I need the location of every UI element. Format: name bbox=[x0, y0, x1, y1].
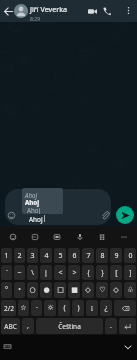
staticText: 2 bbox=[17, 251, 22, 261]
button[interactable]: 7 bbox=[82, 248, 94, 263]
button[interactable]: Clipboard bbox=[48, 228, 66, 246]
staticText: □ bbox=[57, 286, 64, 294]
button[interactable]: | bbox=[40, 265, 52, 280]
button[interactable]: . bbox=[105, 318, 117, 334]
button[interactable]: { bbox=[82, 265, 94, 280]
staticText: ◇ bbox=[85, 286, 91, 294]
button[interactable]: Jiří Veverka bbox=[30, 4, 68, 22]
staticText: > bbox=[72, 268, 77, 278]
button[interactable]: ] bbox=[124, 265, 136, 280]
other: Enter bbox=[124, 323, 131, 330]
button[interactable]: Emoji bbox=[4, 228, 22, 246]
staticText: \ bbox=[31, 268, 34, 278]
staticText: [ bbox=[115, 268, 118, 278]
button[interactable]: } bbox=[96, 265, 108, 280]
staticText: 4 bbox=[44, 251, 49, 261]
button[interactable]: Back bbox=[0, 3, 16, 19]
button[interactable]: Contact photo bbox=[14, 4, 28, 18]
staticText: ¡ bbox=[91, 303, 93, 313]
button[interactable]: 8 bbox=[96, 248, 108, 263]
button[interactable]: ☼ bbox=[44, 300, 56, 316]
staticText: . bbox=[110, 321, 112, 331]
button[interactable]: ¡ bbox=[86, 300, 98, 316]
button[interactable]: GIF bbox=[26, 228, 44, 246]
other: Backspace bbox=[122, 305, 129, 312]
staticText: 1 bbox=[4, 251, 9, 261]
button[interactable]: \ bbox=[27, 265, 38, 280]
button[interactable]: ♡ bbox=[96, 282, 108, 298]
button[interactable]: Switch keyboard bbox=[0, 339, 14, 353]
staticText: ♡ bbox=[99, 286, 106, 294]
button[interactable]: > bbox=[68, 265, 80, 280]
staticText: ☆ bbox=[20, 304, 27, 312]
staticText: | bbox=[44, 268, 48, 278]
staticText: 8:29 bbox=[30, 15, 41, 22]
staticText: Ahoj bbox=[29, 215, 43, 224]
staticText: < bbox=[58, 268, 63, 278]
button[interactable]: 1 bbox=[1, 248, 12, 263]
staticText: 3 bbox=[30, 251, 35, 261]
button[interactable]: ○ bbox=[27, 282, 38, 298]
staticText: ` bbox=[6, 268, 8, 278]
staticText: · bbox=[36, 303, 38, 313]
button[interactable]: Backspace bbox=[114, 300, 136, 316]
button[interactable]: 2 bbox=[14, 248, 25, 263]
staticText: Jiří Veverka bbox=[30, 4, 68, 14]
button[interactable]: ◇ bbox=[82, 282, 94, 298]
button[interactable]: 5 bbox=[54, 248, 66, 263]
button[interactable]: Emoji bbox=[5, 209, 17, 221]
staticText: Ahoj bbox=[25, 191, 38, 199]
button[interactable]: Send bbox=[116, 206, 134, 224]
button[interactable]: Attach bbox=[99, 209, 111, 221]
button[interactable]: [ bbox=[110, 265, 122, 280]
staticText: 7 bbox=[86, 251, 91, 261]
button[interactable]: 3 bbox=[27, 248, 38, 263]
button[interactable]: Voice input bbox=[71, 228, 89, 246]
staticText: 6 bbox=[72, 251, 77, 261]
staticText: • bbox=[18, 285, 21, 295]
staticText: ) bbox=[77, 303, 80, 313]
button[interactable]: 9 bbox=[110, 248, 122, 263]
button[interactable]: · bbox=[31, 300, 42, 316]
button[interactable]: ☆ bbox=[18, 300, 29, 316]
staticText: ¿ bbox=[104, 303, 108, 313]
button[interactable]: 2/2 bbox=[1, 300, 16, 316]
button[interactable]: 4 bbox=[40, 248, 52, 263]
staticText: ( bbox=[63, 303, 66, 313]
button[interactable]: ♧ bbox=[124, 282, 136, 298]
staticText: ~ bbox=[17, 268, 22, 278]
button[interactable]: ■ bbox=[68, 282, 80, 298]
staticText: 0 bbox=[128, 251, 133, 261]
staticText: 8 bbox=[100, 251, 105, 261]
button[interactable]: More bbox=[115, 228, 133, 246]
button[interactable]: Ahoj bbox=[22, 188, 63, 214]
button[interactable]: □ bbox=[54, 282, 66, 298]
staticText: 9 bbox=[114, 251, 119, 261]
button[interactable]: Hide keyboard bbox=[120, 339, 136, 355]
button[interactable]: ( bbox=[58, 300, 70, 316]
button[interactable]: More options bbox=[121, 3, 135, 17]
staticText: ○ bbox=[29, 286, 36, 294]
button[interactable]: ~ bbox=[14, 265, 25, 280]
button[interactable]: Enter bbox=[119, 318, 136, 334]
button[interactable]: Čeština bbox=[36, 318, 103, 334]
button[interactable]: Video call bbox=[84, 3, 100, 19]
button[interactable]: , bbox=[22, 318, 34, 334]
staticText: ] bbox=[129, 268, 132, 278]
button[interactable] bbox=[5, 189, 111, 225]
button[interactable]: • bbox=[14, 282, 25, 298]
button[interactable]: 6 bbox=[68, 248, 80, 263]
button[interactable]: < bbox=[54, 265, 66, 280]
button[interactable]: Settings bbox=[93, 228, 111, 246]
staticText: Čeština bbox=[58, 322, 81, 331]
button[interactable]: 0 bbox=[124, 248, 136, 263]
button[interactable]: ° bbox=[1, 282, 12, 298]
button[interactable]: ` bbox=[1, 265, 12, 280]
button[interactable]: ¿ bbox=[100, 300, 112, 316]
button[interactable]: ● bbox=[40, 282, 52, 298]
staticText: Ahoj bbox=[27, 206, 41, 214]
button[interactable]: ◇ bbox=[110, 282, 122, 298]
button[interactable]: ABC bbox=[1, 318, 20, 334]
button[interactable]: Voice call bbox=[99, 3, 115, 19]
button[interactable]: ) bbox=[72, 300, 84, 316]
